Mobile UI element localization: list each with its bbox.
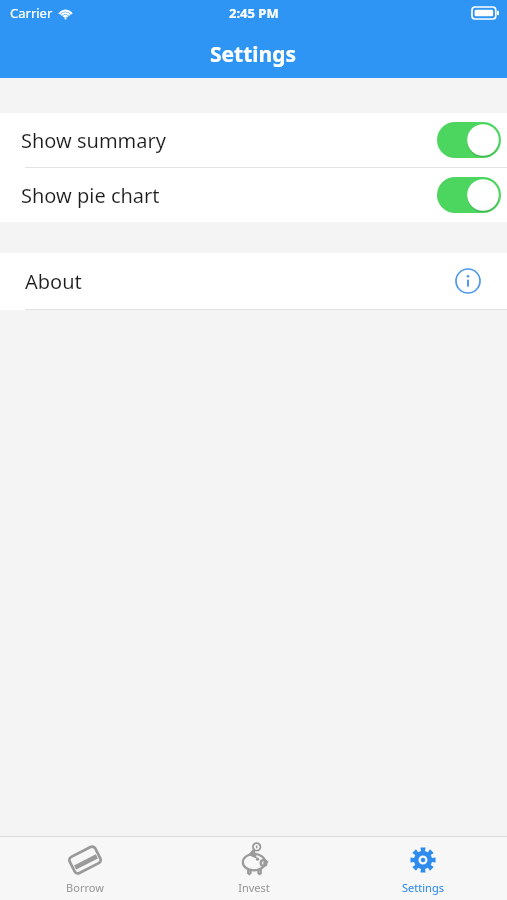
other: About info [455, 268, 481, 294]
button[interactable]: Toggle [437, 177, 501, 213]
button[interactable]: Toggle [437, 122, 501, 158]
button[interactable]: Show summary [0, 113, 507, 167]
staticText: Carrier [10, 4, 53, 22]
button[interactable]: Invest [169, 837, 338, 900]
button[interactable]: Borrow [0, 837, 169, 900]
staticText: Settings [402, 880, 444, 895]
button[interactable]: About [0, 253, 507, 309]
staticText: About [25, 268, 82, 295]
staticText: Show pie chart [21, 182, 160, 209]
staticText: Show summary [21, 127, 166, 154]
staticText: Borrow [66, 880, 104, 895]
staticText: Invest [238, 880, 270, 895]
button[interactable]: Show pie chart [0, 168, 507, 222]
button[interactable]: Settings [338, 837, 507, 900]
staticText: 2:45 PM [229, 4, 279, 22]
staticText: Settings [210, 40, 297, 69]
